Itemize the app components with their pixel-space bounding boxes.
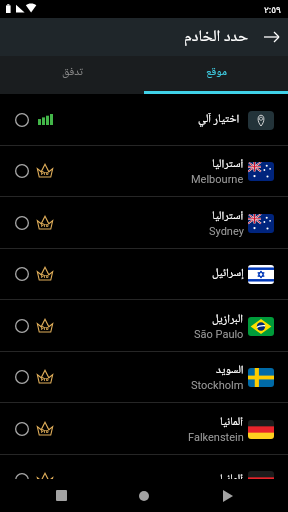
staticText: تدفق (62, 65, 83, 81)
staticText: Pro (41, 273, 49, 279)
button[interactable]: Pro (0, 454, 288, 506)
staticText: البرازيل (212, 312, 244, 328)
button[interactable]: Back (204, 479, 252, 512)
staticText: إسرائيل (212, 266, 244, 282)
button[interactable]: Pro (0, 403, 288, 455)
staticText: Pro (41, 428, 49, 434)
staticText: Pro (41, 376, 49, 382)
button[interactable]: Pro (0, 300, 288, 352)
staticText: São Paulo (194, 328, 244, 341)
button[interactable]: Pro (0, 197, 288, 249)
staticText: أستراليا (212, 157, 244, 173)
staticText: السويد (216, 363, 244, 379)
button[interactable]: Home (120, 479, 168, 512)
staticText: ألمانيا (220, 415, 244, 431)
button[interactable]: Pro (0, 248, 288, 300)
staticText: أستراليا (212, 209, 244, 225)
staticText: Falkenstein (188, 431, 244, 444)
staticText: Pro (41, 170, 49, 176)
staticText: Stockholm (191, 379, 244, 392)
button[interactable]: Pro (0, 145, 288, 197)
staticText: موقع (206, 65, 227, 81)
button[interactable]: Back (259, 25, 283, 49)
staticText: Sydney (209, 225, 244, 238)
button[interactable]: تدفق (0, 54, 144, 92)
staticText: حدد الخادم (184, 24, 249, 51)
staticText: ٢:٥٩ (264, 3, 281, 15)
staticText: Pro (41, 325, 49, 331)
staticText: ألمانيا (220, 472, 244, 488)
button[interactable]: Pro (0, 351, 288, 403)
button[interactable]: اختيار آلي (0, 94, 288, 146)
staticText: Melbourne (191, 173, 244, 186)
button[interactable]: Recent apps (37, 479, 85, 512)
staticText: اختيار آلي (198, 112, 240, 128)
staticText: Pro (41, 222, 49, 228)
button[interactable]: موقع (144, 54, 288, 92)
